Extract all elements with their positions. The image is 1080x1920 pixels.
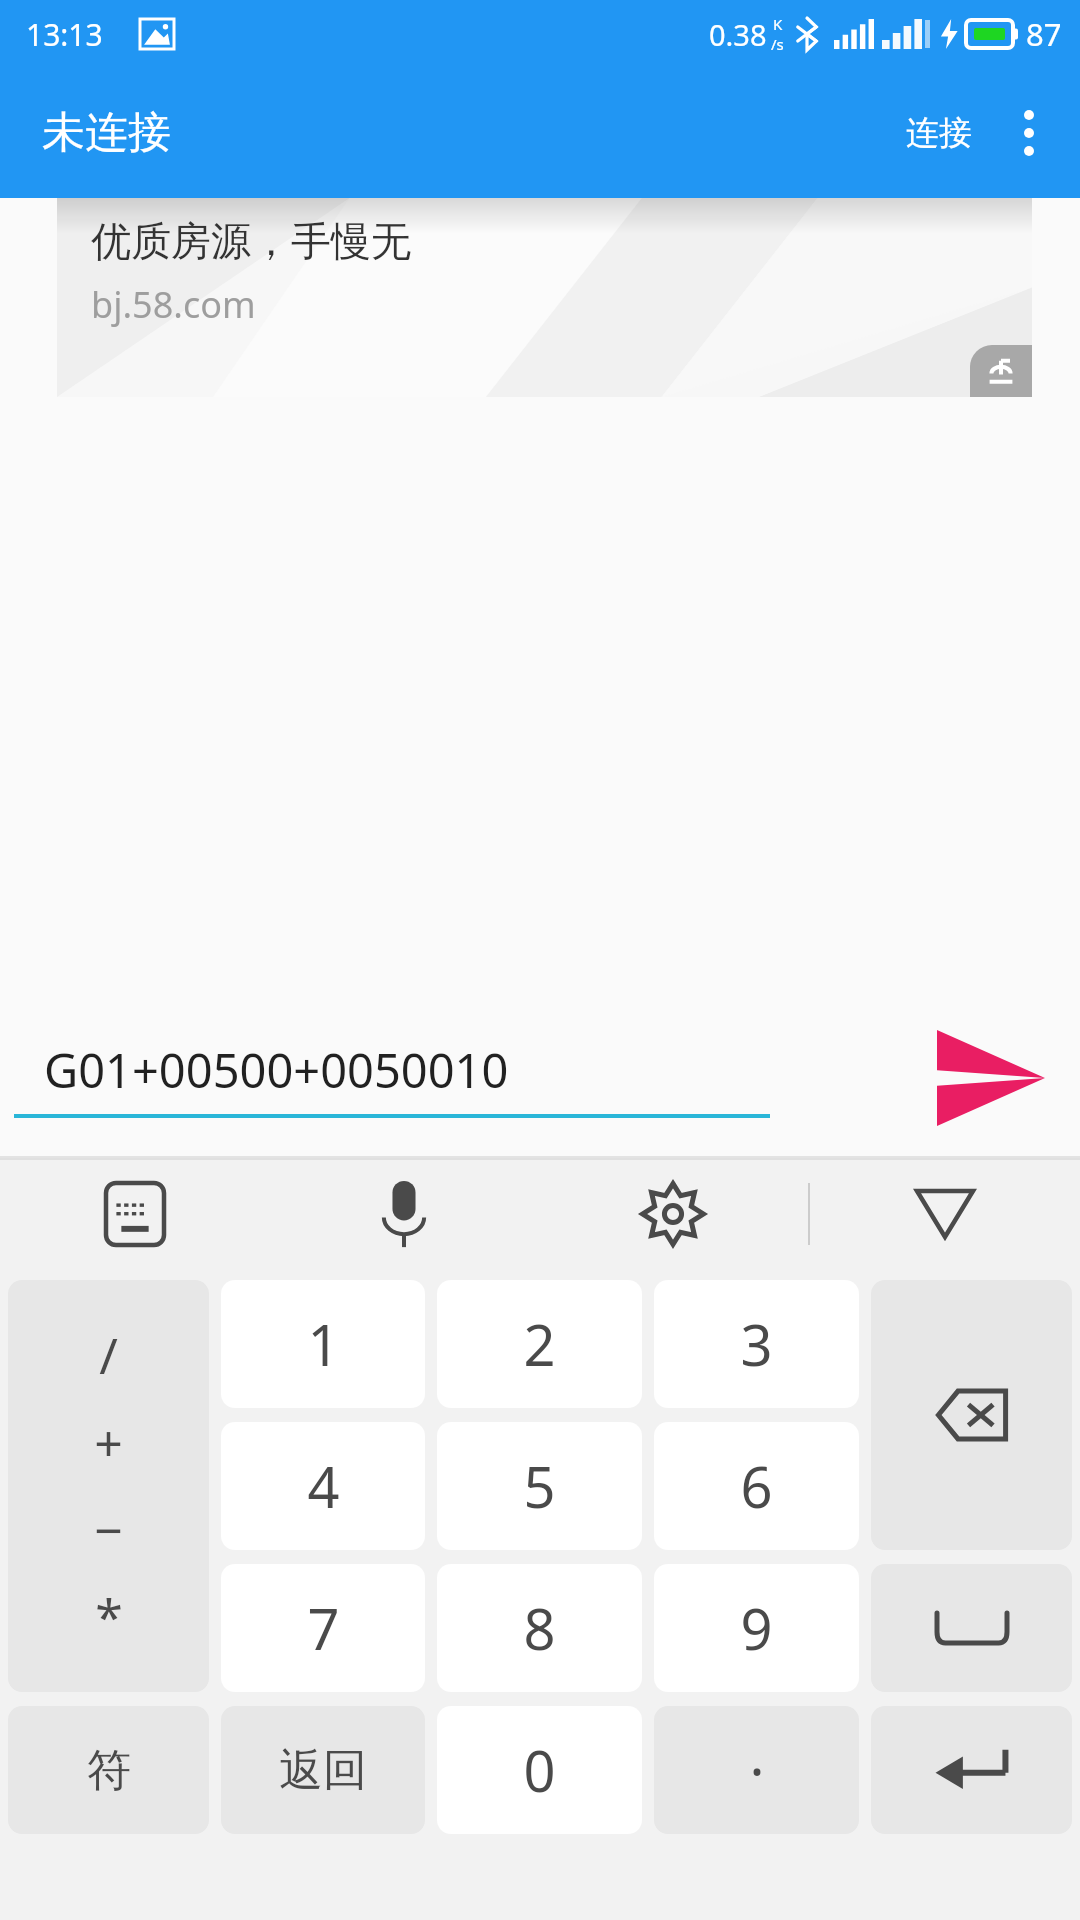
staticText: 87 [1026,13,1062,55]
staticText: / [99,1321,118,1389]
staticText: 13:13 [26,14,103,55]
staticText: /s [771,34,784,54]
button[interactable]: 3 [654,1280,859,1408]
staticText: 1 [307,1306,340,1382]
staticText: 8 [523,1590,556,1666]
button[interactable]: Operators [8,1280,209,1692]
staticText: 优质房源，手慢无 [91,216,411,266]
staticText: K [773,14,783,34]
button[interactable]: Keyboard layout [0,1158,269,1270]
button[interactable]: 返回 [221,1706,425,1834]
button[interactable]: Voice input [269,1158,538,1270]
button[interactable]: G01+00500+0050010 [14,1038,770,1118]
staticText: − [94,1496,123,1564]
button[interactable]: More options [990,88,1080,178]
button[interactable]: . [654,1706,859,1834]
staticText: 3 [740,1306,773,1382]
staticText: * [95,1583,123,1651]
button[interactable]: 5 [437,1422,642,1550]
staticText: · [749,1732,765,1808]
button[interactable]: 4 [221,1422,425,1550]
button[interactable]: Settings [538,1158,808,1270]
button[interactable]: Send [916,1013,1066,1143]
staticText: + [94,1408,123,1476]
button[interactable]: Backspace [871,1280,1072,1550]
staticText: G01+00500+0050010 [44,1038,509,1102]
staticText: 0.38 [709,15,767,54]
button[interactable]: 符 [8,1706,209,1834]
button[interactable]: 1 [221,1280,425,1408]
button[interactable]: 6 [654,1422,859,1550]
button[interactable]: 0 [437,1706,642,1834]
button[interactable]: 9 [654,1564,859,1692]
staticText: 返回 [279,1743,367,1798]
staticText: 4 [307,1448,340,1524]
button[interactable]: 连接 [888,92,990,174]
staticText: 5 [523,1448,556,1524]
staticText: 符 [87,1743,131,1798]
staticText: bj.58.com [91,280,256,329]
button[interactable]: 优质房源，手慢无 [57,198,1032,397]
staticText: 未连接 [42,106,171,160]
staticText: 7 [307,1590,340,1666]
staticText: 6 [740,1448,773,1524]
button[interactable]: 8 [437,1564,642,1692]
button[interactable]: 2 [437,1280,642,1408]
button[interactable]: Enter [871,1706,1072,1834]
staticText: 连接 [906,112,972,154]
button[interactable]: Space [871,1564,1072,1692]
button[interactable]: 7 [221,1564,425,1692]
staticText: 2 [523,1306,556,1382]
staticText: 0 [523,1732,556,1808]
staticText: 9 [740,1590,773,1666]
button[interactable]: Hide keyboard [810,1158,1080,1270]
